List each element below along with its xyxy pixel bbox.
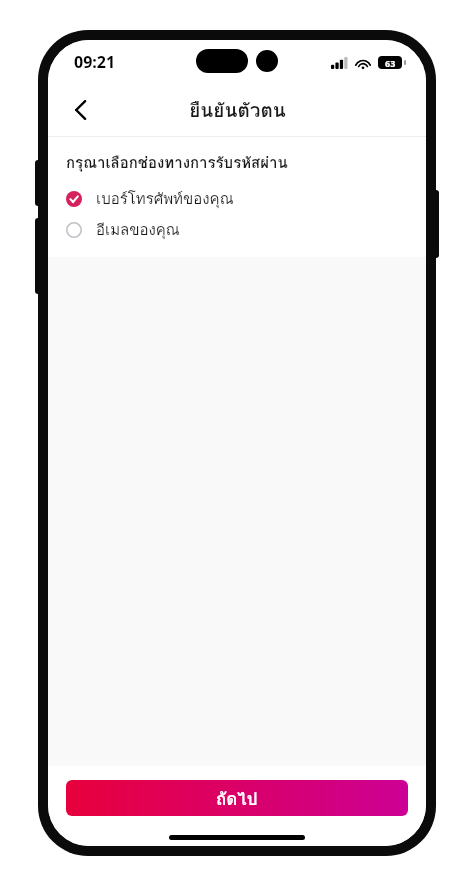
staticText: 63 (385, 57, 396, 69)
button[interactable]: อีเมลของคุณ (48, 214, 426, 245)
button[interactable]: เบอร์โทรศัพท์ของคุณ (48, 183, 426, 214)
button[interactable]: Back (58, 88, 102, 132)
button[interactable]: ถัดไป (66, 780, 408, 816)
staticText: เบอร์โทรศัพท์ของคุณ (96, 187, 234, 211)
staticText: กรุณาเลือกช่องทางการรับรหัสผ่าน (66, 151, 288, 175)
staticText: 09:21 (74, 51, 116, 73)
staticText: ถัดไป (216, 785, 258, 812)
staticText: ยืนยันตัวตน (189, 95, 286, 125)
staticText: อีเมลของคุณ (96, 218, 180, 242)
